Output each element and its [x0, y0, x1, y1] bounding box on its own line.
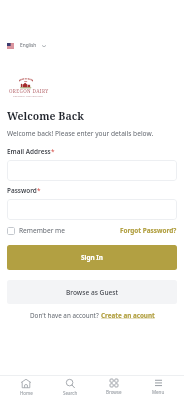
staticText: Browse as Guest	[66, 288, 119, 297]
staticText: Sign In	[81, 253, 103, 262]
staticText: Welcome Back	[7, 109, 84, 123]
staticText: Email Address	[7, 147, 51, 156]
button[interactable]	[7, 199, 177, 220]
staticText: Browse	[106, 389, 122, 395]
staticText: Menu	[152, 389, 165, 395]
button[interactable]: Browse as Guest	[7, 280, 177, 304]
button[interactable]: Sign In	[7, 245, 177, 270]
staticText: English	[20, 42, 37, 49]
button[interactable]: Search	[48, 379, 92, 396]
button[interactable]: Home	[4, 379, 48, 396]
staticText: Remember me	[19, 226, 65, 235]
button[interactable]: English	[6, 41, 47, 50]
staticText: *	[51, 147, 55, 156]
staticText: FARM MARKET · FAMILY RESTAURANT	[9, 95, 47, 97]
staticText: OREGON DAIRY	[9, 88, 49, 94]
staticText: Forgot Password?	[120, 226, 177, 235]
button[interactable]: Menu	[136, 379, 180, 395]
staticText: Search	[63, 390, 78, 396]
staticText: Password	[7, 186, 37, 195]
staticText: *	[37, 186, 41, 195]
button[interactable]: Remember me	[7, 226, 65, 235]
button[interactable]	[7, 160, 177, 181]
staticText: Welcome back! Please enter your details …	[7, 129, 154, 138]
staticText: Create an acount	[101, 311, 155, 320]
button[interactable]: Browse	[92, 379, 136, 395]
button[interactable]: Forgot Password?	[120, 226, 177, 235]
staticText: Don't have an account?	[30, 311, 101, 320]
button[interactable]: Create an acount	[101, 311, 155, 320]
staticText: Home	[20, 390, 33, 396]
